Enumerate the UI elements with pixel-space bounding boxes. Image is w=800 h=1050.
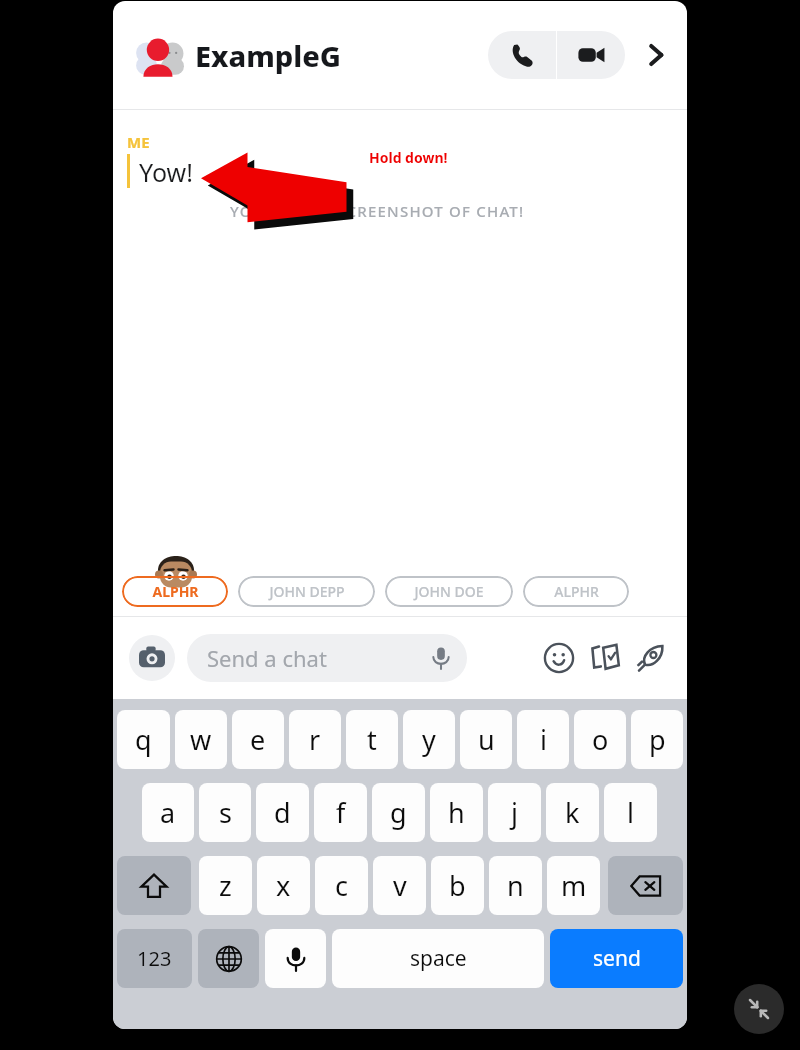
button[interactable]: More options (639, 38, 673, 72)
button[interactable]: i (517, 710, 569, 769)
staticText: y (422, 721, 436, 758)
staticText: u (478, 721, 495, 758)
button[interactable]: v (373, 856, 426, 915)
staticText: i (540, 721, 547, 758)
staticText: v (393, 867, 407, 904)
staticText: ExampleG (195, 36, 342, 75)
staticText: t (367, 721, 377, 758)
staticText: a (160, 794, 176, 831)
button[interactable]: JOHN DEPP (238, 576, 375, 607)
button[interactable]: b (431, 856, 484, 915)
staticText: space (410, 944, 467, 973)
button[interactable]: e (232, 710, 284, 769)
button[interactable]: Group avatar (133, 29, 185, 81)
staticText: send (593, 944, 641, 973)
button[interactable]: Backspace (608, 856, 683, 915)
button[interactable]: JOHN DOE (385, 576, 513, 607)
staticText: m (561, 867, 587, 904)
staticText: q (135, 721, 152, 758)
staticText: JOHN DEPP (269, 582, 345, 601)
staticText: s (219, 794, 232, 831)
button[interactable]: Numbers (117, 929, 192, 988)
button[interactable]: ALPHR (523, 576, 629, 607)
staticText: f (336, 794, 346, 831)
staticText: h (448, 794, 465, 831)
staticText: n (507, 867, 524, 904)
button[interactable]: x (257, 856, 310, 915)
button[interactable]: Collapse (734, 984, 784, 1034)
button[interactable]: Voice call (488, 31, 556, 79)
button[interactable]: h (430, 783, 483, 842)
button[interactable]: m (547, 856, 600, 915)
staticText: r (309, 721, 321, 758)
button[interactable]: Emoji (539, 638, 579, 678)
button[interactable]: r (289, 710, 341, 769)
button[interactable]: Dictate (265, 929, 326, 988)
staticText: e (250, 721, 266, 758)
staticText: l (627, 794, 634, 831)
button[interactable]: c (315, 856, 368, 915)
staticText: ME (127, 132, 150, 152)
staticText: JOHN DOE (414, 582, 484, 601)
button[interactable]: ALPHR (122, 576, 228, 607)
staticText: ALPHR (152, 582, 199, 601)
button[interactable]: Shift (117, 856, 191, 915)
button[interactable]: f (314, 783, 367, 842)
button[interactable]: Camera (129, 635, 175, 681)
button[interactable]: p (631, 710, 683, 769)
button[interactable]: Rocket (631, 638, 671, 678)
button[interactable]: z (199, 856, 252, 915)
button[interactable]: Change keyboard language (198, 929, 259, 988)
staticText: g (390, 794, 407, 831)
staticText: c (335, 867, 348, 904)
button[interactable]: Stickers (585, 638, 625, 678)
button[interactable]: space (332, 929, 544, 988)
button[interactable]: w (175, 710, 227, 769)
button[interactable]: u (460, 710, 512, 769)
button[interactable]: q (117, 710, 170, 769)
staticText: 123 (137, 945, 172, 972)
staticText: b (449, 867, 466, 904)
staticText: x (276, 867, 291, 904)
staticText: j (511, 794, 518, 831)
staticText: ALPHR (554, 582, 599, 601)
staticText: Yow! (139, 155, 193, 189)
staticText: d (274, 794, 291, 831)
button[interactable]: o (574, 710, 626, 769)
staticText: YOU TOOK A SCREENSHOT OF CHAT! (230, 201, 525, 221)
button[interactable]: y (403, 710, 455, 769)
button[interactable]: s (199, 783, 251, 842)
staticText: Send a chat (207, 643, 327, 673)
button[interactable]: a (142, 783, 194, 842)
button[interactable]: g (372, 783, 425, 842)
button[interactable]: l (604, 783, 657, 842)
button[interactable]: d (256, 783, 309, 842)
staticText: k (565, 794, 580, 831)
button[interactable]: send (550, 929, 683, 988)
button[interactable]: Video call (557, 31, 625, 79)
staticText: Hold down! (369, 148, 448, 167)
staticText: o (592, 721, 609, 758)
button[interactable]: t (346, 710, 398, 769)
button[interactable]: n (489, 856, 542, 915)
button[interactable]: k (546, 783, 599, 842)
button[interactable]: Send a chat (187, 634, 467, 682)
staticText: w (190, 721, 212, 758)
staticText: p (649, 721, 666, 758)
staticText: z (219, 867, 232, 904)
button[interactable]: j (488, 783, 541, 842)
